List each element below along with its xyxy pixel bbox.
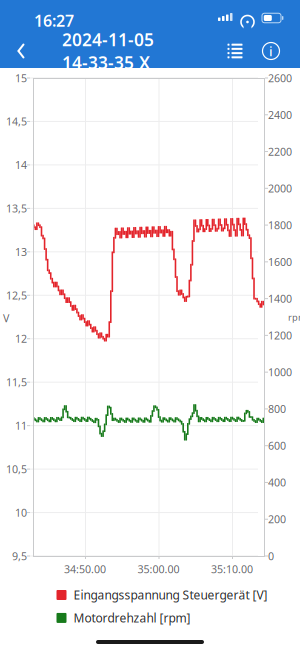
staticText: 34:50.00	[64, 562, 106, 576]
staticText: Motordrehzahl [rpm]	[73, 610, 190, 626]
staticText: 11	[15, 419, 27, 433]
staticText: 1000	[268, 365, 292, 379]
staticText: 10	[15, 505, 27, 520]
staticText: 0	[268, 549, 274, 563]
staticText: 800	[268, 402, 286, 416]
staticText: 200	[268, 512, 286, 526]
staticText: 2400	[268, 108, 292, 122]
button[interactable]: Eingangsspannung Steuergerät [V]	[56, 585, 267, 605]
button[interactable]: 2024-11-05 14-33-35 X	[62, 28, 154, 74]
staticText: 10,5	[6, 462, 27, 476]
button[interactable]: List	[220, 36, 250, 66]
staticText: 16:27	[34, 10, 74, 31]
staticText: Eingangsspannung Steuergerät [V]	[73, 587, 267, 603]
staticText: 35:00.00	[137, 562, 179, 576]
staticText: 1400	[268, 291, 292, 306]
staticText: 400	[268, 475, 286, 490]
staticText: 35:10.00	[211, 562, 253, 576]
staticText: 12,5	[6, 288, 27, 302]
staticText: 600	[268, 439, 286, 453]
staticText: 11,5	[6, 375, 27, 389]
staticText: 13	[15, 245, 27, 259]
staticText: 15	[15, 71, 27, 85]
staticText: 14	[15, 158, 27, 172]
staticText: 13,5	[6, 201, 27, 215]
staticText: 14,5	[6, 114, 27, 129]
staticText: 1800	[268, 218, 292, 232]
staticText: 2000	[268, 181, 292, 195]
staticText: 2024-11-05 14-33-35 X	[62, 28, 154, 74]
button[interactable]: Motordrehzahl [rpm]	[56, 608, 190, 628]
staticText: 9,5	[12, 549, 27, 563]
staticText: 1600	[268, 255, 292, 269]
button[interactable]: Info	[256, 36, 286, 66]
staticText: V	[3, 311, 9, 325]
button[interactable]: Back	[6, 36, 36, 66]
staticText: 2200	[268, 144, 292, 159]
staticText: 1200	[268, 328, 292, 342]
staticText: rpm	[288, 311, 300, 323]
staticText: 2600	[268, 71, 292, 85]
staticText: i	[269, 42, 273, 60]
staticText: 12	[15, 332, 27, 346]
